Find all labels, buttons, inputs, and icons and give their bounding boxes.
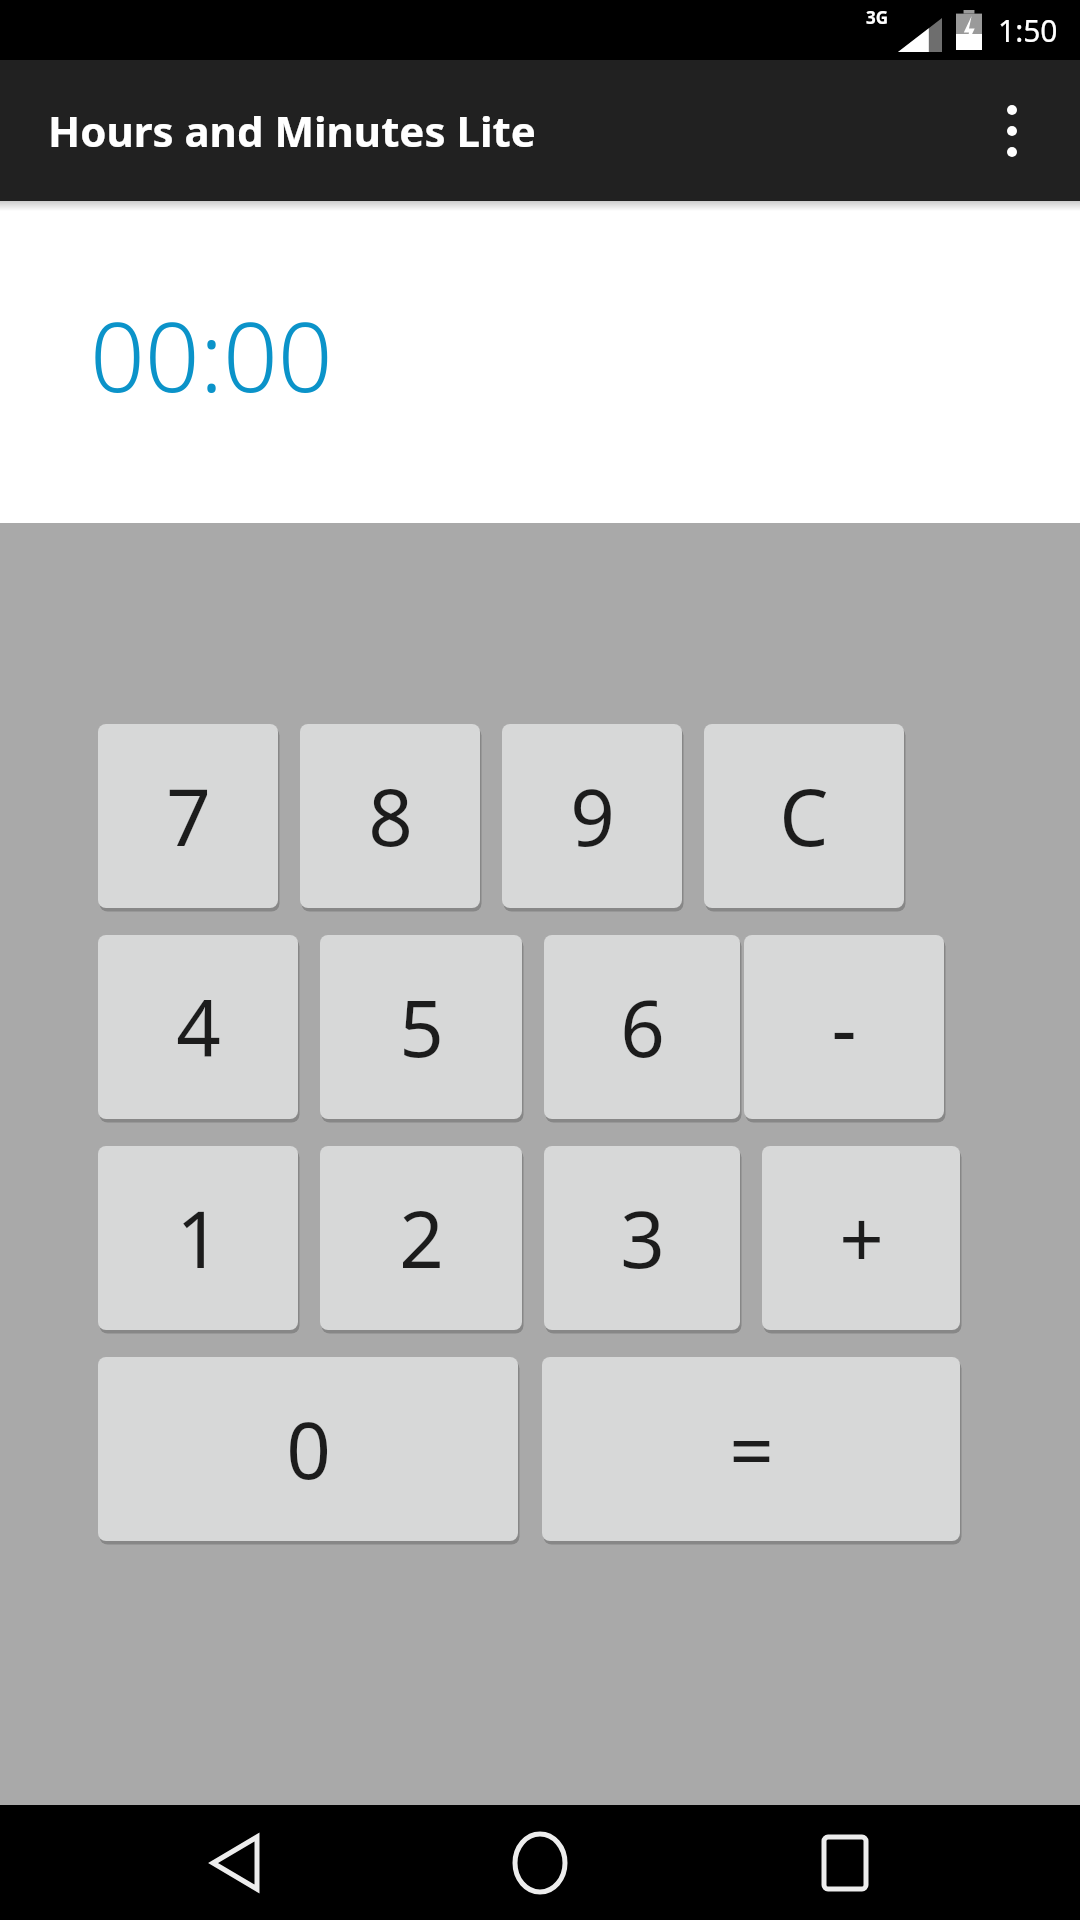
button[interactable]: 1 — [98, 1146, 298, 1330]
button[interactable]: 0 — [98, 1357, 518, 1541]
button[interactable]: 8 — [300, 724, 480, 908]
staticText: 6 — [620, 974, 665, 1080]
staticText: 5 — [399, 974, 444, 1080]
button[interactable]: = — [542, 1357, 960, 1541]
staticText: C — [779, 763, 829, 869]
button[interactable]: 7 — [98, 724, 278, 908]
staticText: 4 — [176, 974, 221, 1080]
button[interactable]: 5 — [320, 935, 522, 1119]
button[interactable]: - — [744, 935, 944, 1119]
staticText: 3 — [620, 1185, 665, 1291]
staticText: Hours and Minutes Lite — [48, 102, 536, 159]
staticText: 2 — [399, 1185, 444, 1291]
staticText: 00:00 — [90, 289, 333, 420]
button[interactable]: 2 — [320, 1146, 522, 1330]
button[interactable]: More options — [964, 83, 1060, 179]
button[interactable]: + — [762, 1146, 960, 1330]
staticText: 3G — [866, 6, 889, 29]
staticText: 8 — [368, 763, 413, 869]
staticText: 1 — [176, 1185, 221, 1291]
button[interactable]: 9 — [502, 724, 682, 908]
button[interactable]: 3 — [544, 1146, 740, 1330]
button[interactable]: C — [704, 724, 904, 908]
staticText: 9 — [570, 763, 615, 869]
staticText: - — [831, 974, 857, 1080]
button[interactable]: 6 — [544, 935, 740, 1119]
button[interactable]: 4 — [98, 935, 298, 1119]
staticText: + — [839, 1185, 884, 1291]
staticText: 1:50 — [998, 10, 1058, 51]
button[interactable]: Recent apps — [775, 1805, 915, 1920]
button[interactable]: Back — [165, 1805, 305, 1920]
staticText: 0 — [286, 1396, 331, 1502]
staticText: 7 — [166, 763, 211, 869]
staticText: = — [729, 1396, 774, 1502]
button[interactable]: Home — [470, 1805, 610, 1920]
